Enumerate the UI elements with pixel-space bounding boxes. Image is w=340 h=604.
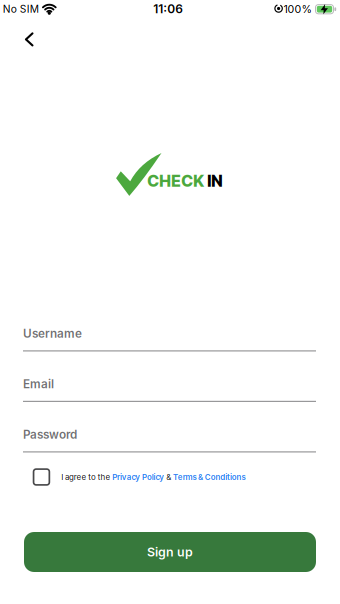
staticText: Terms & Conditions: [173, 472, 245, 482]
button[interactable]: Password: [23, 427, 316, 452]
staticText: Privacy Policy: [112, 472, 164, 482]
staticText: CHECK: [147, 171, 207, 191]
staticText: 11:06: [153, 2, 183, 16]
button[interactable]: Email: [23, 377, 316, 402]
staticText: No SIM: [3, 3, 39, 15]
button[interactable]: Sign up: [24, 532, 316, 572]
button[interactable]: Back: [19, 26, 39, 52]
button[interactable]: Terms & Conditions: [173, 472, 245, 482]
button[interactable]: Privacy Policy: [112, 472, 164, 482]
button[interactable]: Username: [23, 326, 316, 351]
staticText: I agree to the: [61, 472, 112, 482]
staticText: Email: [23, 377, 54, 391]
staticText: Username: [23, 326, 82, 341]
staticText: Sign up: [147, 544, 193, 559]
staticText: Password: [23, 427, 77, 442]
staticText: IN: [207, 171, 222, 191]
staticText: &: [164, 472, 173, 482]
button[interactable]: Agree to the Privacy Policy and Terms & …: [33, 468, 50, 486]
staticText: 100%: [283, 2, 311, 15]
